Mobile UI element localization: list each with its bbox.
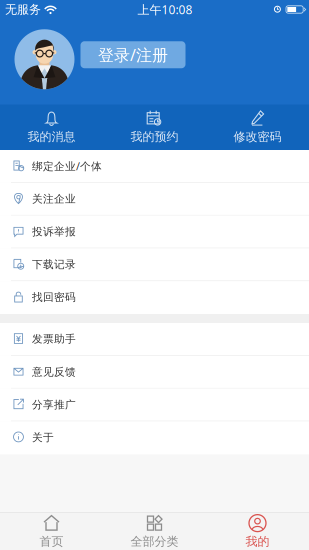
button[interactable]: 关于: [0, 421, 309, 454]
staticText: 全部分类: [130, 534, 178, 549]
button[interactable]: 修改密码: [206, 104, 309, 150]
staticText: 下载记录: [32, 258, 76, 271]
button[interactable]: 发票助手: [0, 323, 309, 356]
staticText: 关于: [32, 431, 54, 444]
staticText: 投诉举报: [32, 225, 76, 238]
staticText: 发票助手: [32, 332, 76, 346]
staticText: 绑定企业/个体: [32, 159, 102, 173]
button[interactable]: 分享推广: [0, 389, 309, 421]
staticText: 登录/注册: [98, 44, 168, 65]
button[interactable]: 我的预约: [103, 104, 206, 150]
button[interactable]: 登录/注册: [80, 41, 185, 68]
staticText: 我的消息: [27, 129, 75, 144]
staticText: 无服务: [5, 2, 41, 17]
button[interactable]: 下载记录: [0, 248, 309, 281]
button[interactable]: 关注企业: [0, 183, 309, 216]
staticText: 找回密码: [32, 291, 76, 304]
button[interactable]: 找回密码: [0, 281, 309, 314]
staticText: 分享推广: [32, 398, 76, 411]
staticText: 我的: [245, 534, 269, 549]
staticText: 首页: [39, 534, 63, 549]
button[interactable]: 意见反馈: [0, 356, 309, 389]
button[interactable]: 投诉举报: [0, 216, 309, 248]
button[interactable]: 我的: [206, 510, 309, 550]
button[interactable]: 全部分类: [103, 510, 206, 550]
button[interactable]: 绑定企业/个体: [0, 150, 309, 183]
staticText: 意见反馈: [32, 365, 76, 378]
button[interactable]: 首页: [0, 510, 103, 550]
staticText: 关注企业: [32, 192, 76, 205]
button[interactable]: 我的消息: [0, 104, 103, 150]
staticText: 我的预约: [130, 129, 178, 144]
staticText: 上午10:08: [137, 1, 192, 17]
staticText: 修改密码: [233, 129, 281, 144]
